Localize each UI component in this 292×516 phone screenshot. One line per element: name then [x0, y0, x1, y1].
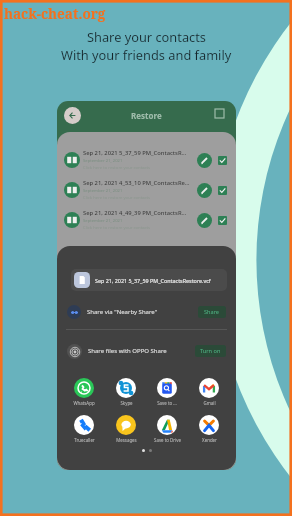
staticText: Share your contacts: [87, 28, 206, 45]
staticText: Click here to restore your contacts: [83, 225, 151, 231]
staticText: Sep 21, 2021 5_37_59 PM_ContactsR…: [83, 149, 187, 157]
button[interactable]: Select: [218, 216, 227, 225]
staticText: Messages: [116, 437, 137, 443]
button[interactable]: Select: [218, 156, 227, 165]
staticText: Save to …: [157, 400, 177, 406]
staticText: Truecaller: [74, 437, 95, 443]
staticText: Save to Drive: [154, 437, 181, 443]
staticText: Sep 21, 2021 5_37_59 PM_ContactsRestore.…: [95, 277, 211, 284]
staticText: Click here to restore your contacts: [83, 195, 151, 201]
staticText: Sep 21, 2021 4_49_39 PM_ContactsR…: [83, 209, 187, 217]
button[interactable]: Share: [204, 308, 220, 316]
button[interactable]: Sep 21, 2021 5_37_59 PM_ContactsR…: [57, 145, 236, 175]
button[interactable]: Sep 21, 2021 4_53_10 PM_ContactsRe…: [57, 175, 236, 205]
button[interactable]: Select: [218, 186, 227, 195]
button[interactable]: Share via "Nearby Share": [67, 301, 226, 323]
button[interactable]: Sep 21, 2021 5_37_59 PM_ContactsRestore.…: [71, 269, 227, 291]
button[interactable]: Skype: [109, 378, 143, 406]
button[interactable]: Select all: [211, 105, 228, 122]
staticText: Click here to restore your contacts: [83, 165, 151, 171]
button[interactable]: Back: [64, 107, 81, 124]
staticText: Restore: [131, 110, 162, 121]
button[interactable]: WhatsApp: [67, 378, 101, 406]
staticText: Share files with OPPO Share: [88, 347, 167, 355]
staticText: Sep 21, 2021 4_53_10 PM_ContactsRe…: [83, 179, 190, 187]
staticText: hack-cheat.org: [4, 5, 106, 23]
button[interactable]: Sep 21, 2021 4_49_39 PM_ContactsR…: [57, 205, 236, 235]
staticText: September 21, 2021: [83, 188, 123, 194]
button[interactable]: Xender: [192, 415, 226, 443]
button[interactable]: Edit: [197, 183, 212, 198]
button[interactable]: Save to …: [150, 378, 184, 406]
button[interactable]: Edit: [197, 213, 212, 228]
staticText: Skype: [120, 400, 133, 406]
button[interactable]: Save to Drive: [150, 415, 184, 443]
button[interactable]: Truecaller: [67, 415, 101, 443]
staticText: Turn on: [200, 347, 221, 355]
button[interactable]: Share files with OPPO Share: [67, 339, 226, 363]
staticText: Xender: [202, 437, 217, 443]
staticText: Gmail: [203, 400, 216, 406]
staticText: September 21, 2021: [83, 218, 123, 224]
button[interactable]: Edit: [197, 153, 212, 168]
button[interactable]: Gmail: [192, 378, 226, 406]
button[interactable]: Turn on: [200, 347, 221, 355]
staticText: WhatsApp: [73, 400, 95, 406]
staticText: With your friends and family: [61, 46, 232, 63]
staticText: Share: [204, 308, 220, 316]
button[interactable]: Messages: [109, 415, 143, 443]
staticText: Share via "Nearby Share": [87, 308, 158, 316]
staticText: September 21, 2021: [83, 158, 123, 164]
